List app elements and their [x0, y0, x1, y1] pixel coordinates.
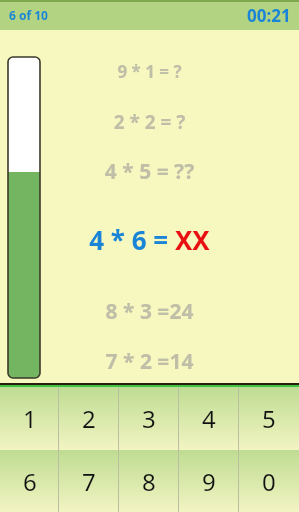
- button[interactable]: 2: [59, 387, 119, 450]
- button[interactable]: 0: [239, 450, 299, 512]
- button[interactable]: 4 * 6 = XX: [0, 222, 299, 257]
- button[interactable]: 3: [119, 387, 179, 450]
- staticText: 8 * 3 =24: [0, 297, 299, 326]
- staticText: 5: [262, 402, 276, 435]
- staticText: 9 * 1 = ?: [0, 60, 299, 83]
- staticText: 4 * 6 = XX: [0, 222, 299, 257]
- staticText: 0: [262, 465, 276, 498]
- staticText: 1: [23, 402, 37, 435]
- staticText: 3: [142, 402, 156, 435]
- staticText: 2: [82, 402, 96, 435]
- button[interactable]: 8: [119, 450, 179, 512]
- button[interactable]: 7: [59, 450, 119, 512]
- staticText: 9: [202, 465, 216, 498]
- staticText: 6 of 10: [9, 7, 48, 23]
- staticText: 2 * 2 = ?: [0, 109, 299, 135]
- staticText: 00:21: [247, 4, 291, 27]
- button[interactable]: 6: [0, 450, 59, 512]
- button[interactable]: 5: [239, 387, 299, 450]
- staticText: 4 * 5 = ??: [0, 157, 299, 186]
- button[interactable]: 9: [179, 450, 239, 512]
- staticText: 7 * 2 =14: [0, 347, 299, 376]
- staticText: 7: [82, 465, 96, 498]
- button[interactable]: 4: [179, 387, 239, 450]
- staticText: 6: [23, 465, 37, 498]
- staticText: 4: [202, 402, 216, 435]
- button[interactable]: 1: [0, 387, 59, 450]
- staticText: 8: [142, 465, 156, 498]
